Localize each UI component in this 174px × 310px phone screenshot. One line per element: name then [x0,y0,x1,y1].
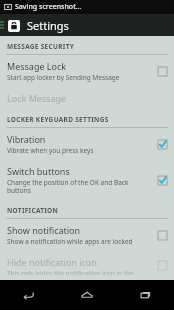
button[interactable]: Show notification [0,219,174,251]
staticText: Lock Message [7,92,67,104]
button[interactable]: Lock Message [0,87,174,109]
staticText: MESSAGE SECURITY [7,42,75,51]
staticText: Vibrate when you press keys [7,146,94,155]
button[interactable]: Toggle [157,260,168,271]
button[interactable]: Vibration [0,128,174,160]
staticText: Start app locker by Sending Message [7,73,120,82]
button[interactable]: Hide notification icon [0,251,174,280]
staticText: Vibration [7,133,46,145]
button[interactable]: Message Lock [0,55,174,87]
staticText: Settings [27,18,69,33]
staticText: Hide notification icon [7,256,97,268]
staticText: Message Lock [7,60,67,72]
staticText: Show notification [7,224,81,236]
staticText: Switch buttons [7,165,70,177]
button[interactable]: Back [0,280,58,310]
button[interactable]: Home [58,280,116,310]
button[interactable]: Toggle [157,139,168,150]
button[interactable]: Switch buttons [0,160,174,200]
button[interactable]: Toggle [157,175,168,186]
button[interactable]: Toggle [157,230,168,241]
button[interactable]: Recents [116,280,174,310]
staticText: Saving screenshot... [15,2,82,12]
staticText: This only hides the notification icon in… [7,269,151,275]
button[interactable]: Toggle [157,66,168,77]
staticText: LOCKER KEYGUARD SETTINGS [7,115,109,124]
staticText: Change the position of the OK and Back b… [7,178,151,195]
staticText: Show a notification while apps are locke… [7,237,133,246]
staticText: NOTIFICATION [7,206,59,215]
